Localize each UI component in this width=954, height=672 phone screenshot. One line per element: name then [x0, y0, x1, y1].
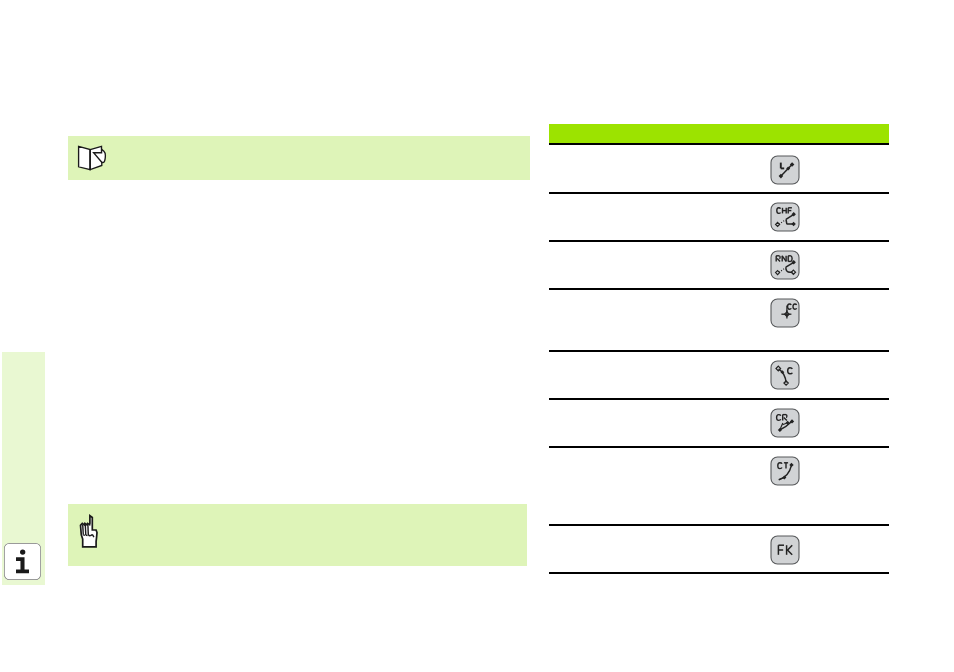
- button[interactable]: C – circular arc: [549, 351, 889, 398]
- button[interactable]: Please note while programming: [68, 504, 527, 566]
- button[interactable]: CHF – chamfer: [549, 193, 889, 240]
- button[interactable]: Refer to the machine manual: [68, 136, 530, 180]
- button[interactable]: L – straight line: [549, 145, 889, 192]
- button[interactable]: CR – circular arc with radius: [549, 399, 889, 446]
- button[interactable]: FK – free contour programming: [549, 525, 889, 572]
- button[interactable]: CC – circle centre: [549, 289, 889, 350]
- button[interactable]: CT – tangential circular arc: [549, 447, 889, 524]
- button[interactable]: Information chapter tab: [2, 352, 45, 585]
- button[interactable]: RND – corner rounding: [549, 241, 889, 288]
